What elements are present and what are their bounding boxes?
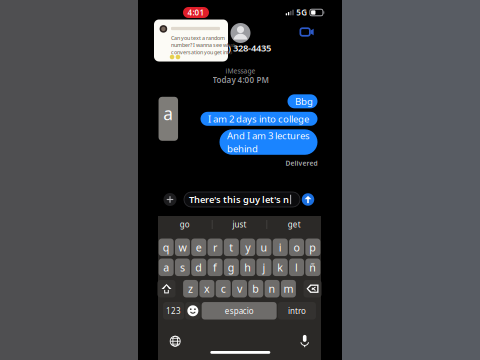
- button[interactable]: Dictate: [295, 332, 315, 350]
- staticText: b: [252, 282, 259, 296]
- button[interactable]: n: [265, 280, 280, 297]
- staticText: Delivered: [285, 159, 317, 168]
- button[interactable]: Switch keyboard: [165, 332, 185, 350]
- button[interactable]: a: [159, 259, 174, 276]
- button[interactable]: 123: [163, 302, 184, 320]
- staticText: n: [269, 282, 276, 296]
- button[interactable]: just: [212, 217, 266, 231]
- staticText: s: [180, 260, 185, 274]
- button[interactable]: Add attachment: [161, 191, 179, 208]
- staticText: Today 4:00 PM: [212, 75, 268, 85]
- staticText: There's this guy let's n: [189, 193, 289, 206]
- staticText: Bbg: [295, 95, 313, 108]
- button[interactable]: r: [208, 239, 223, 256]
- button[interactable]: b: [248, 280, 263, 297]
- button[interactable]: FaceTime: [296, 24, 318, 40]
- staticText: ñ: [309, 260, 316, 274]
- button[interactable]: There's this guy let's n: [184, 192, 300, 207]
- staticText: q: [163, 240, 170, 254]
- staticText: l: [295, 260, 298, 274]
- button[interactable]: Send: [300, 191, 316, 207]
- button[interactable]: s: [175, 259, 190, 276]
- staticText: 5G: [296, 7, 307, 18]
- button[interactable]: get: [267, 217, 321, 231]
- button[interactable]: g: [224, 259, 239, 276]
- staticText: r: [213, 240, 217, 254]
- staticText: go: [180, 219, 190, 230]
- button[interactable]: x: [199, 280, 214, 297]
- staticText: z: [188, 282, 193, 296]
- button[interactable]: t: [224, 239, 239, 256]
- staticText: intro: [288, 305, 306, 316]
- staticText: a: [163, 102, 173, 125]
- staticText: iMessage: [225, 67, 255, 75]
- button[interactable]: espacio: [202, 302, 277, 320]
- button[interactable]: Shift: [157, 280, 175, 297]
- button[interactable]: ñ: [305, 259, 320, 276]
- button[interactable]: f: [208, 259, 223, 276]
- staticText: Can you text a random number? I wanna se…: [171, 34, 235, 56]
- staticText: espacio: [225, 305, 254, 316]
- staticText: i: [279, 240, 282, 254]
- staticText: o: [294, 240, 300, 254]
- staticText: t: [229, 240, 233, 254]
- staticText: f: [213, 260, 217, 274]
- staticText: w: [178, 240, 186, 254]
- button[interactable]: i: [273, 239, 288, 256]
- staticText: get: [288, 219, 301, 230]
- button[interactable]: w: [175, 239, 190, 256]
- staticText: c: [221, 282, 226, 296]
- button[interactable]: y: [240, 239, 255, 256]
- staticText: p: [309, 240, 316, 254]
- button[interactable]: d: [191, 259, 206, 276]
- button[interactable]: k: [273, 259, 288, 276]
- staticText: 4:01: [187, 7, 204, 18]
- button[interactable]: c: [216, 280, 231, 297]
- button[interactable]: v: [232, 280, 247, 297]
- staticText: just: [232, 219, 246, 230]
- button[interactable]: q: [159, 239, 174, 256]
- staticText: k: [277, 260, 283, 274]
- button[interactable]: Emoji: [185, 302, 200, 320]
- button[interactable]: go: [158, 217, 212, 231]
- button[interactable]: u: [256, 239, 271, 256]
- button[interactable]: j: [256, 259, 271, 276]
- staticText: u: [260, 240, 267, 254]
- staticText: 123: [166, 305, 181, 316]
- button[interactable]: p: [305, 239, 320, 256]
- staticText: m: [283, 282, 293, 296]
- staticText: j: [262, 260, 265, 274]
- staticText: x: [204, 282, 210, 296]
- button[interactable]: o: [289, 239, 304, 256]
- staticText: y: [245, 240, 250, 254]
- button[interactable]: e: [191, 239, 206, 256]
- staticText: a: [163, 260, 169, 274]
- button[interactable]: z: [183, 280, 198, 297]
- button[interactable]: m: [281, 280, 296, 297]
- staticText: g: [228, 260, 235, 274]
- button[interactable]: h: [240, 259, 255, 276]
- button[interactable]: l: [289, 259, 304, 276]
- staticText: e: [196, 240, 202, 254]
- staticText: I am 2 days into college: [208, 112, 309, 125]
- staticText: (314) 328-4435: [210, 42, 271, 54]
- button[interactable]: Delete: [303, 280, 321, 297]
- button[interactable]: intro: [278, 302, 316, 320]
- staticText: h: [244, 260, 251, 274]
- staticText: v: [237, 282, 242, 296]
- staticText: d: [195, 260, 202, 274]
- staticText: And I am 3 lectures behind: [227, 129, 310, 155]
